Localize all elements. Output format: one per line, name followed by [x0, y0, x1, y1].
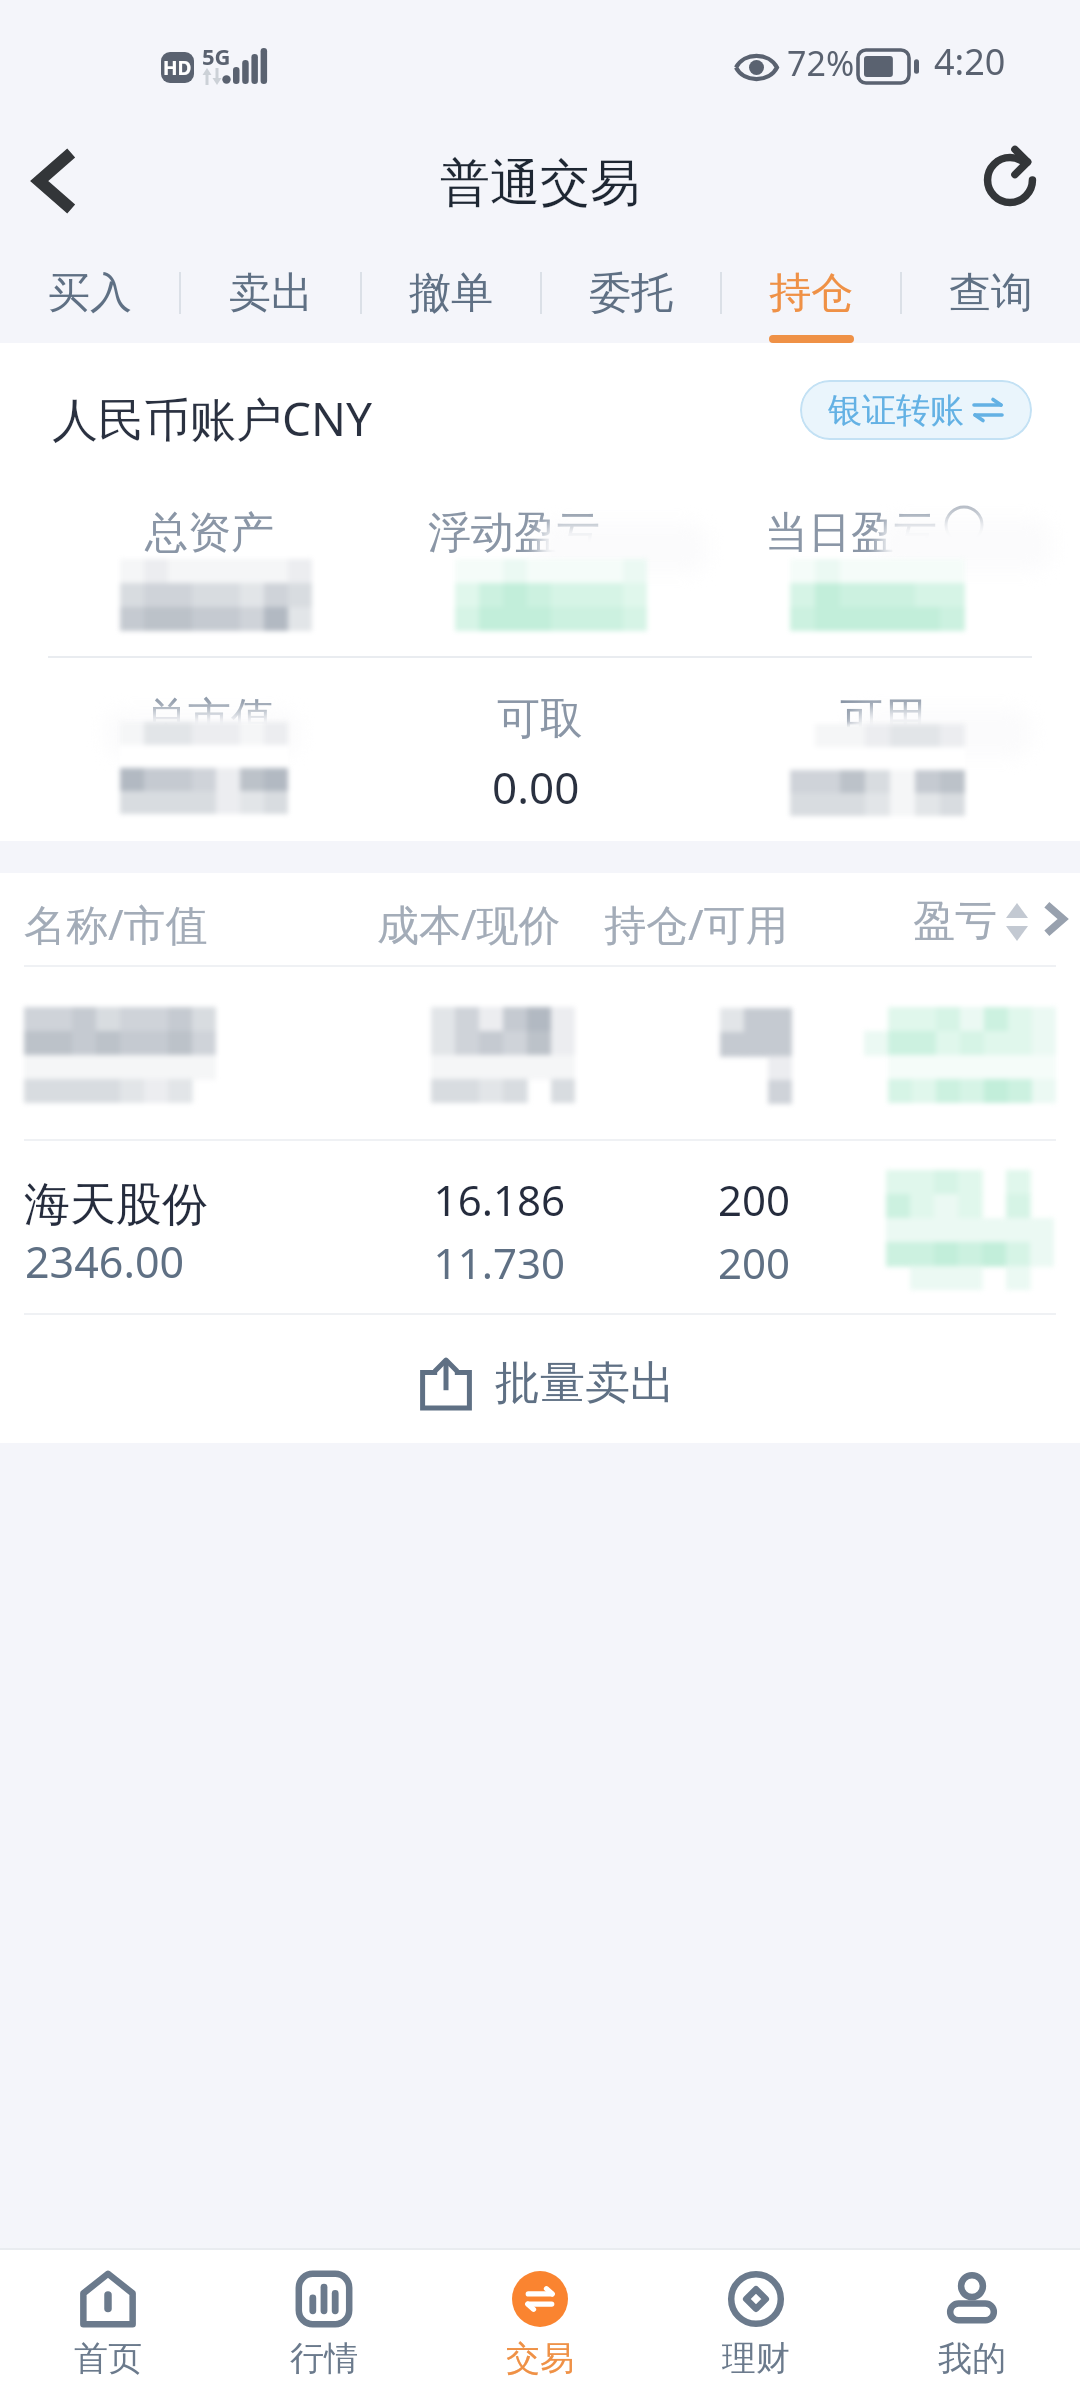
staticText: 2346.00: [25, 1232, 185, 1291]
button[interactable]: [0, 967, 1080, 1139]
button[interactable]: 理财: [648, 2250, 864, 2400]
button[interactable]: 批量卖出: [396, 1341, 699, 1426]
staticText: 5G: [202, 41, 231, 71]
button[interactable]: 银证转账: [800, 380, 1032, 440]
staticText: 买入: [48, 267, 132, 320]
staticText: 4:20: [934, 37, 1006, 86]
button[interactable]: 行情: [216, 2250, 432, 2400]
staticText: 72%: [787, 40, 855, 86]
staticText: 批量卖出: [495, 1355, 675, 1412]
staticText: 总市值: [145, 692, 274, 746]
button[interactable]: Back: [6, 133, 102, 229]
staticText: 行情: [290, 2337, 358, 2380]
staticText: 我的: [938, 2337, 1006, 2380]
staticText: 委托: [589, 267, 673, 320]
staticText: 名称/市值: [24, 895, 208, 952]
staticText: 0.00: [492, 757, 580, 817]
button[interactable]: 我的: [864, 2250, 1080, 2400]
button[interactable]: 首页: [0, 2250, 216, 2400]
staticText: 持仓/可用: [604, 895, 788, 952]
button[interactable]: More columns: [1030, 889, 1080, 949]
staticText: 200: [587, 1171, 790, 1228]
staticText: 普通交易: [440, 152, 640, 215]
staticText: 银证转账: [828, 389, 964, 432]
button[interactable]: 买入: [0, 243, 179, 343]
staticText: 当日盈亏: [765, 506, 937, 560]
staticText: 持仓: [769, 267, 853, 320]
staticText: 16.186: [282, 1171, 565, 1228]
staticText: 查询: [949, 267, 1033, 320]
button[interactable]: 卖出: [181, 243, 360, 343]
button[interactable]: 海天股份: [0, 1141, 1080, 1313]
staticText: 交易: [506, 2337, 574, 2380]
staticText: 首页: [74, 2337, 142, 2380]
staticText: 可取: [497, 692, 583, 746]
button[interactable]: 撤单: [362, 243, 540, 343]
staticText: 总资产: [145, 506, 274, 560]
staticText: 盈亏: [913, 895, 997, 948]
staticText: HD: [163, 55, 192, 81]
button[interactable]: 交易: [432, 2250, 648, 2400]
staticText: 200: [587, 1234, 790, 1291]
button[interactable]: 持仓: [722, 243, 900, 343]
staticText: 人民币账户CNY: [52, 387, 373, 450]
staticText: 海天股份: [24, 1176, 208, 1234]
staticText: 可用: [840, 692, 926, 746]
button[interactable]: 委托: [542, 243, 720, 343]
staticText: 成本/现价: [377, 895, 561, 952]
staticText: 11.730: [282, 1234, 565, 1291]
staticText: 卖出: [229, 267, 313, 320]
staticText: 理财: [722, 2337, 790, 2380]
staticText: 撤单: [409, 267, 493, 320]
button[interactable]: Refresh: [962, 128, 1058, 224]
button[interactable]: 查询: [902, 243, 1080, 343]
staticText: 浮动盈亏: [428, 506, 600, 560]
